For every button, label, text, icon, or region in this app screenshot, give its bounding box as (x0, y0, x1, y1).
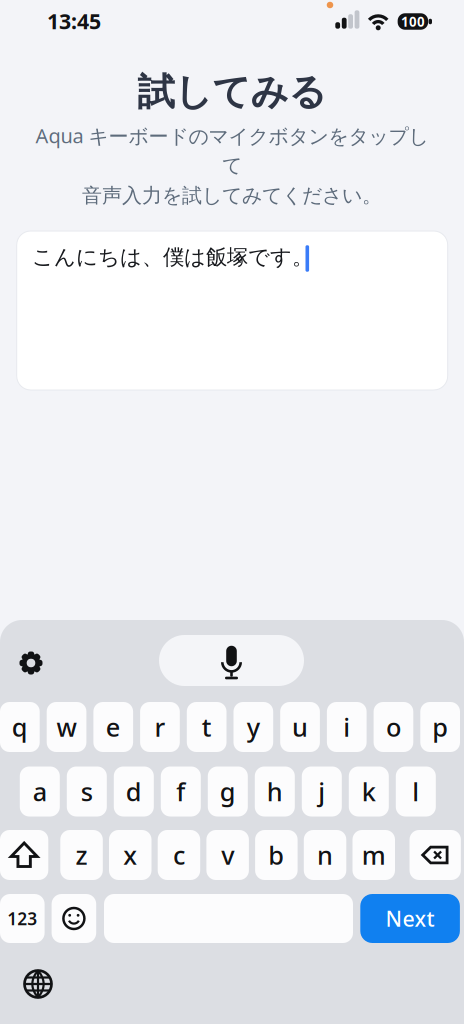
button[interactable]: r (140, 702, 180, 752)
staticText: h (267, 775, 283, 808)
staticText: m (362, 838, 386, 872)
staticText: y (247, 710, 260, 744)
staticText: z (75, 838, 87, 872)
button[interactable]: n (304, 830, 346, 880)
staticText: t (202, 710, 212, 744)
button[interactable] (23, 969, 52, 998)
staticText: u (292, 710, 308, 744)
button[interactable]: m (352, 830, 395, 880)
button[interactable] (159, 635, 304, 686)
button[interactable] (52, 894, 96, 943)
button[interactable] (0, 830, 48, 880)
button[interactable]: p (420, 702, 460, 752)
button[interactable]: u (280, 702, 320, 752)
button[interactable]: Next (360, 894, 460, 943)
staticText: d (126, 775, 142, 808)
staticText: l (412, 775, 419, 808)
button[interactable]: d (114, 766, 154, 816)
staticText: 音声入力を試してみてください。 (82, 183, 382, 208)
staticText: 123 (7, 907, 37, 930)
button[interactable]: j (302, 766, 342, 816)
button[interactable]: b (255, 830, 298, 880)
staticText: w (57, 710, 77, 744)
button[interactable]: k (349, 766, 389, 816)
staticText: て (222, 153, 242, 178)
staticText: こんにちは、僕は飯塚です。 (32, 244, 313, 270)
button[interactable] (410, 830, 461, 880)
button[interactable]: h (255, 766, 295, 816)
staticText: c (173, 838, 185, 872)
button[interactable]: z (60, 830, 103, 880)
staticText: 試してみる (137, 69, 326, 115)
staticText: 13:45 (47, 7, 101, 35)
button[interactable]: s (67, 766, 107, 816)
staticText: i (343, 710, 350, 744)
button[interactable]: y (233, 702, 273, 752)
button[interactable]: g (208, 766, 248, 816)
staticText: k (362, 775, 376, 808)
staticText: Next (386, 904, 435, 933)
staticText: r (154, 710, 165, 744)
staticText: f (176, 775, 185, 808)
button[interactable]: f (161, 766, 201, 816)
staticText: a (33, 775, 47, 808)
button[interactable]: e (93, 702, 133, 752)
staticText: q (12, 710, 28, 744)
button[interactable]: t (187, 702, 226, 752)
staticText: o (386, 710, 401, 744)
button[interactable]: c (158, 830, 200, 880)
button[interactable]: x (109, 830, 151, 880)
staticText: 100 (401, 13, 425, 30)
staticText: g (220, 775, 236, 808)
staticText: s (81, 775, 93, 808)
staticText: e (106, 710, 121, 744)
button[interactable]: q (0, 702, 40, 752)
button[interactable]: w (47, 702, 86, 752)
staticText: b (268, 838, 284, 872)
button[interactable]: a (20, 766, 60, 816)
staticText: p (432, 710, 448, 744)
button[interactable] (19, 651, 42, 674)
staticText: n (317, 838, 333, 872)
button[interactable]: 123 (0, 894, 45, 943)
staticText: x (123, 838, 137, 872)
button[interactable] (17, 231, 448, 390)
button[interactable]: o (374, 702, 413, 752)
button[interactable]: v (206, 830, 249, 880)
staticText: v (221, 838, 234, 872)
staticText: Aqua キーボードのマイクボタンをタップし (35, 122, 428, 149)
button[interactable]: l (396, 766, 436, 816)
staticText: j (318, 775, 325, 808)
button[interactable]: i (327, 702, 367, 752)
